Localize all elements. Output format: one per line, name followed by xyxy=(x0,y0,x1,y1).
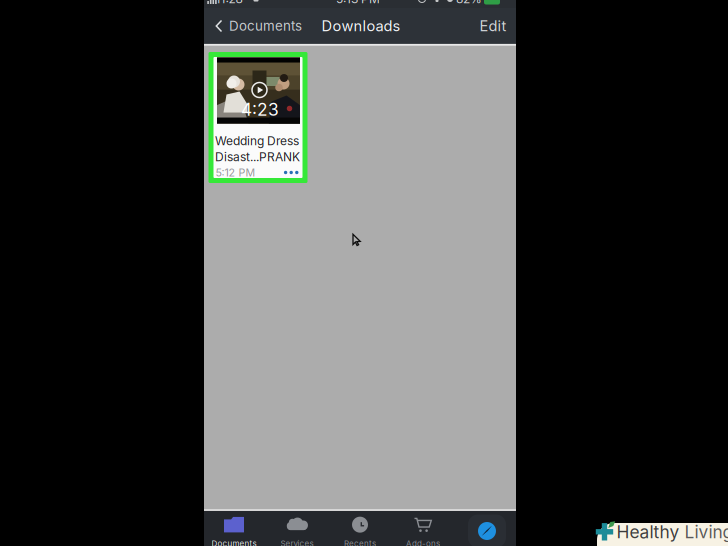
button[interactable]: Documents xyxy=(210,11,307,41)
staticText: Living xyxy=(679,521,728,542)
staticText: 82% xyxy=(456,0,482,6)
staticText: Edit xyxy=(479,17,506,35)
staticText: Wedding Dress xyxy=(215,134,299,148)
staticText: Add-ons xyxy=(406,539,440,546)
staticText: 5:13 PM xyxy=(336,0,380,6)
staticText: Healthy xyxy=(616,521,679,542)
staticText: Disast...PRANK xyxy=(215,150,300,164)
button[interactable]: Edit xyxy=(471,10,514,42)
staticText: Recents xyxy=(344,539,376,546)
staticText: 11:28 xyxy=(215,0,242,6)
staticText: Services xyxy=(280,539,313,546)
button[interactable]: Browser xyxy=(468,514,506,546)
staticText: 5:12 PM xyxy=(215,166,255,179)
button[interactable]: Documents xyxy=(203,515,265,546)
staticText: Documents xyxy=(229,18,302,34)
button[interactable]: Services xyxy=(266,515,328,546)
button[interactable]: 4:23 xyxy=(208,52,307,183)
staticText: Documents xyxy=(211,539,256,546)
button[interactable]: Add-ons xyxy=(392,515,454,546)
staticText: Downloads xyxy=(321,17,400,35)
staticText: 4:23 xyxy=(241,99,279,120)
button[interactable]: Recents xyxy=(329,515,391,546)
